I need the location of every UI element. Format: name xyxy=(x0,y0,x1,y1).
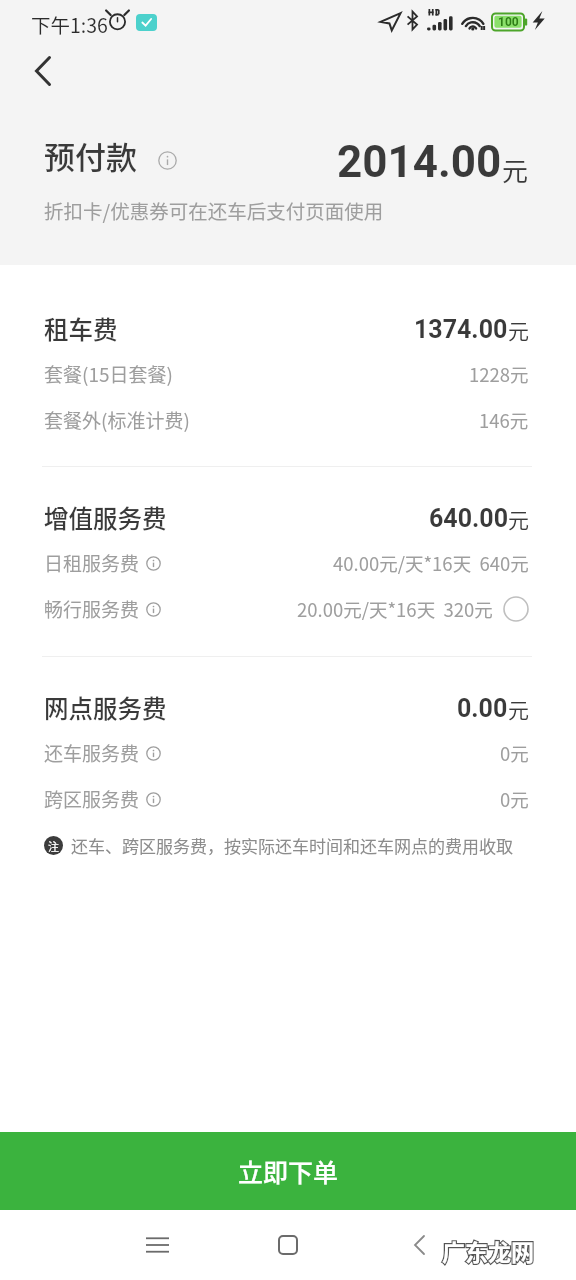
staticText: 广东龙网 xyxy=(442,1234,534,1267)
staticText: 2014.00 xyxy=(337,136,502,188)
staticText: 元 xyxy=(508,315,529,345)
button[interactable]: Home xyxy=(265,1222,311,1268)
button[interactable]: Back xyxy=(396,1222,442,1268)
staticText: 立即下单 xyxy=(238,1153,339,1189)
staticText: 1228元 xyxy=(469,361,529,388)
staticText: 还车、跨区服务费，按实际还车时间和还车网点的费用收取 xyxy=(71,833,513,858)
staticText: 畅行服务费 xyxy=(44,595,140,623)
staticText: 146元 xyxy=(479,407,529,434)
staticText: 下午1:36 xyxy=(31,10,108,38)
staticText: 0.00 xyxy=(457,694,508,723)
staticText: 640.00 xyxy=(429,504,508,533)
button[interactable]: Recents xyxy=(134,1222,180,1268)
staticText: 网点服务费 xyxy=(44,690,167,725)
staticText: 元 xyxy=(502,151,529,189)
staticText: 租车费 xyxy=(44,311,118,346)
staticText: 0元 xyxy=(500,740,529,767)
staticText: 套餐(15日套餐) xyxy=(44,360,173,388)
staticText: 1374.00 xyxy=(414,315,508,344)
staticText: 元 xyxy=(508,504,529,534)
button[interactable]: Back xyxy=(20,48,65,93)
staticText: 20.00元/天*16天 320元 xyxy=(297,596,493,623)
staticText: 广东龙网 xyxy=(442,1234,534,1267)
staticText: 折扣卡/优惠券可在还车后支付页面使用 xyxy=(44,196,384,224)
staticText: 0元 xyxy=(500,786,529,813)
staticText: 预付款 xyxy=(44,133,137,178)
staticText: 40.00元/天*16天 640元 xyxy=(333,550,529,577)
button[interactable]: 立即下单 xyxy=(0,1132,576,1210)
staticText: 跨区服务费 xyxy=(44,785,140,813)
staticText: 还车服务费 xyxy=(44,739,140,767)
staticText: 套餐外(标准计费) xyxy=(44,406,190,434)
staticText: 注 xyxy=(48,838,59,854)
staticText: 100 xyxy=(498,15,519,29)
staticText: 日租服务费 xyxy=(44,549,140,577)
staticText: 增值服务费 xyxy=(44,500,167,535)
button[interactable]: Select option xyxy=(503,596,529,622)
staticText: 元 xyxy=(508,694,529,724)
